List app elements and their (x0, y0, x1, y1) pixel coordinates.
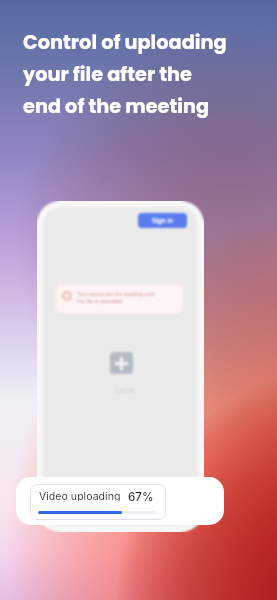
button[interactable]: Add file (110, 352, 133, 374)
staticText: Sign In (152, 217, 174, 225)
button[interactable]: Video uploading (30, 484, 166, 520)
staticText: You cannot join the meeting until the fi… (77, 291, 155, 305)
staticText: Video uploading (39, 490, 121, 501)
staticText: Add file (115, 388, 135, 395)
staticText: 67% (128, 490, 154, 501)
staticText: Control of uploading your file after the… (23, 29, 227, 120)
button[interactable]: Sign In (138, 213, 187, 228)
